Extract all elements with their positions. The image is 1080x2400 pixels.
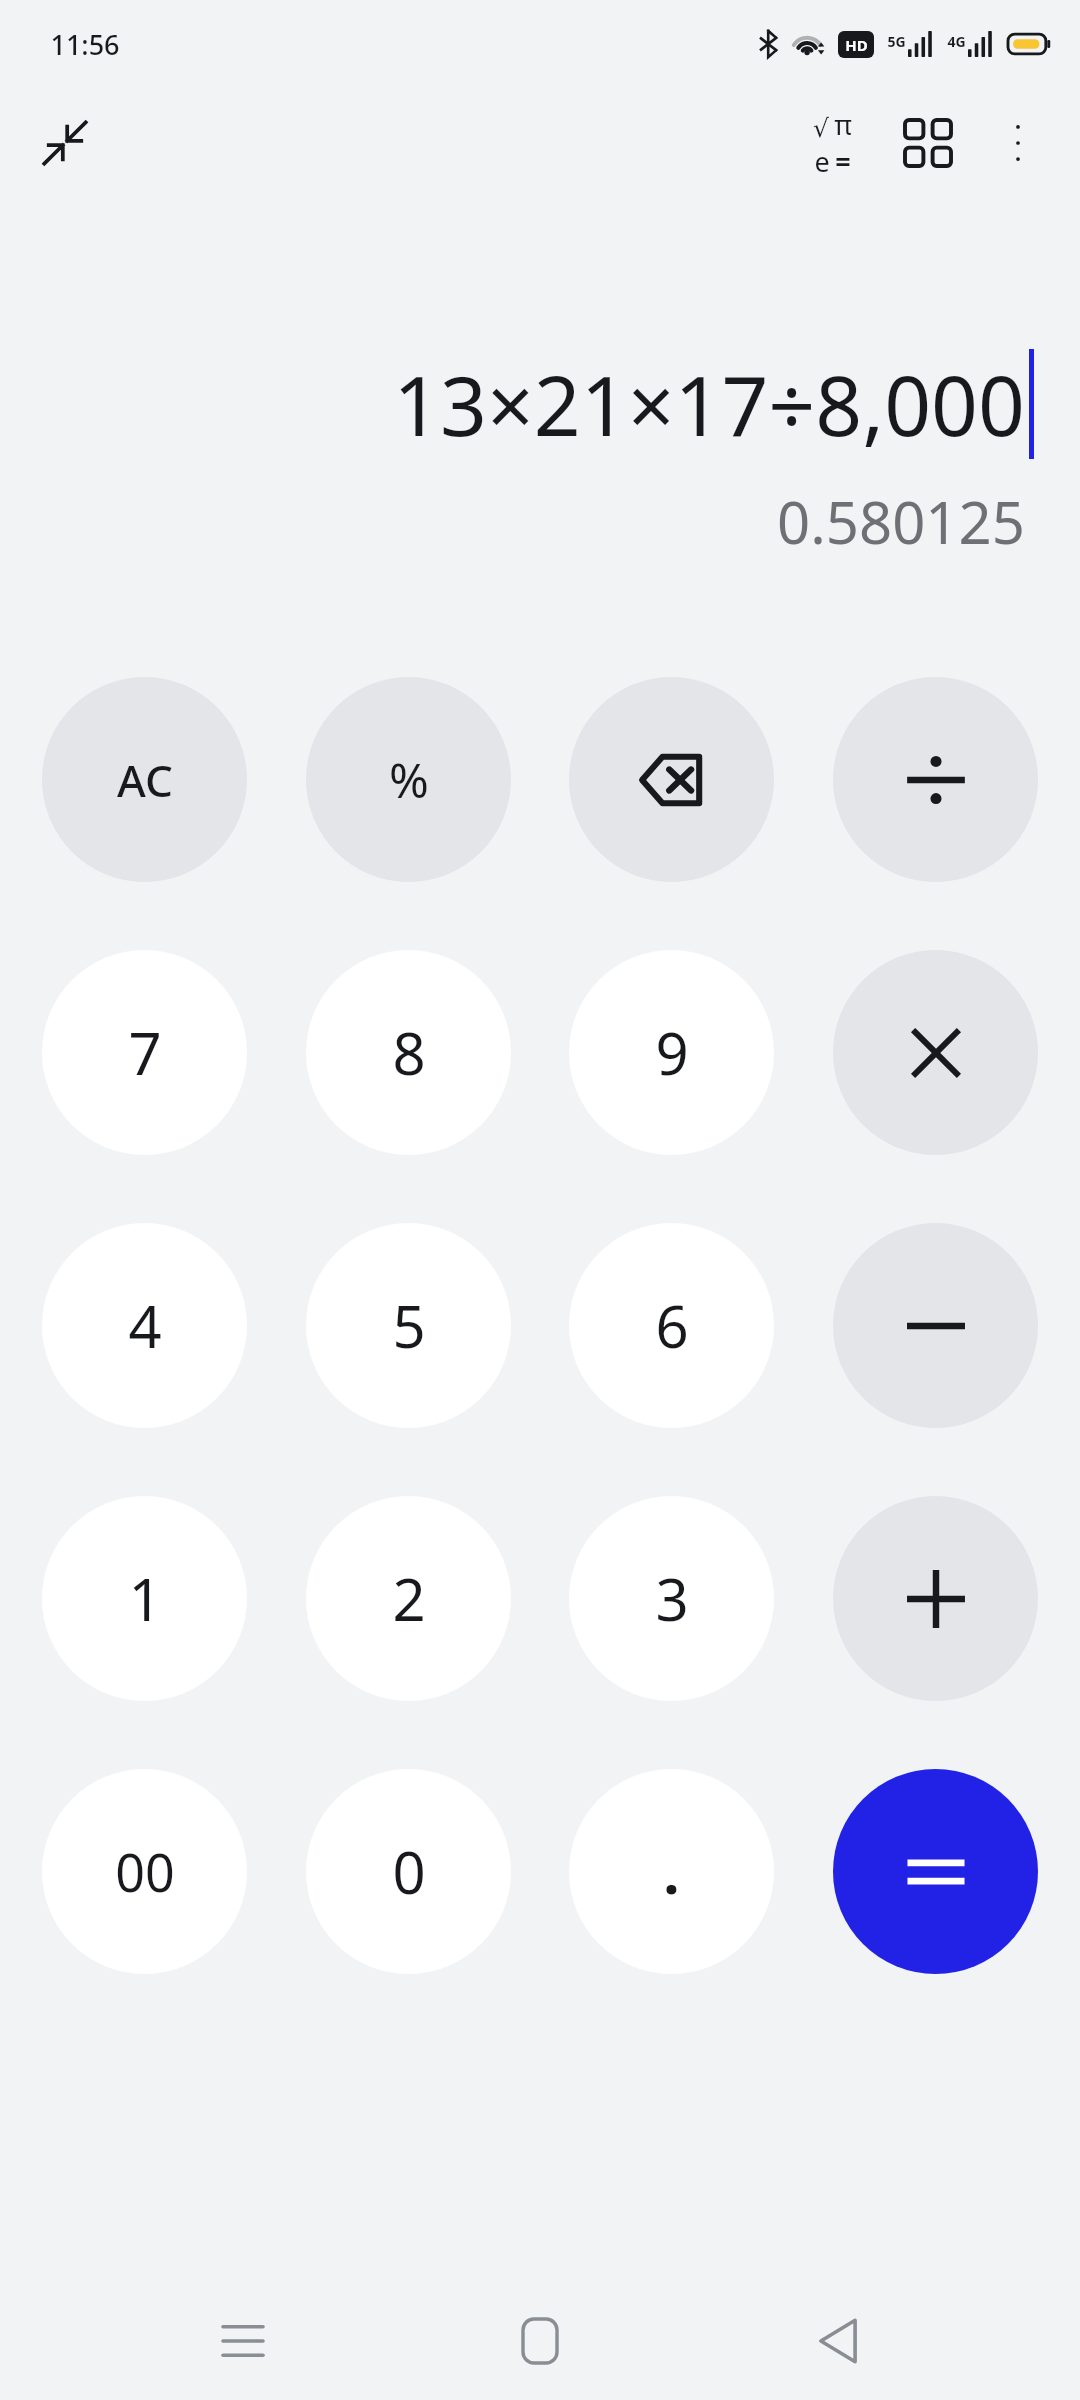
staticText: 00 — [115, 1836, 175, 1907]
button[interactable]: Equals — [833, 1769, 1038, 1974]
staticText: 5 — [392, 1286, 426, 1365]
button[interactable]: 7 — [42, 950, 247, 1155]
staticText: 11:56 — [50, 26, 120, 63]
staticText: π — [834, 106, 852, 143]
button[interactable]: Scientific mode — [790, 101, 874, 185]
staticText: % — [389, 747, 429, 812]
button[interactable]: Recent apps — [188, 2286, 298, 2396]
staticText: √ — [813, 114, 829, 143]
staticText: 0.580125 — [777, 482, 1025, 561]
button[interactable]: Home — [485, 2286, 595, 2396]
staticText: 13×21×17÷8,000 — [393, 348, 1025, 460]
staticText: 3 — [655, 1559, 689, 1638]
staticText: 2 — [392, 1559, 426, 1638]
staticText: . — [663, 1832, 680, 1911]
staticText: 5G — [887, 32, 906, 51]
button[interactable]: 3 — [569, 1496, 774, 1701]
button[interactable]: 1 — [42, 1496, 247, 1701]
button[interactable]: 4 — [42, 1223, 247, 1428]
staticText: 8 — [392, 1013, 426, 1092]
staticText: = — [835, 143, 851, 180]
staticText: 1 — [128, 1559, 162, 1638]
button[interactable]: Multiply — [833, 950, 1038, 1155]
button[interactable]: History — [886, 101, 970, 185]
button[interactable]: Back — [783, 2286, 893, 2396]
button[interactable]: 5 — [306, 1223, 511, 1428]
staticText: AC — [117, 750, 173, 810]
button[interactable]: 6 — [569, 1223, 774, 1428]
button[interactable]: More options — [976, 101, 1060, 185]
button[interactable]: Collapse — [26, 104, 104, 182]
staticText: 4G — [947, 32, 966, 51]
button[interactable]: . — [569, 1769, 774, 1974]
staticText: 0 — [392, 1832, 426, 1911]
staticText: 7 — [128, 1013, 162, 1092]
button[interactable]: Divide — [833, 677, 1038, 882]
button[interactable]: 2 — [306, 1496, 511, 1701]
button[interactable]: % — [306, 677, 511, 882]
button[interactable]: 0 — [306, 1769, 511, 1974]
button[interactable]: Subtract — [833, 1223, 1038, 1428]
button[interactable]: AC — [42, 677, 247, 882]
staticText: 6 — [655, 1286, 689, 1365]
button[interactable]: Backspace — [569, 677, 774, 882]
staticText: 4 — [128, 1286, 162, 1365]
button[interactable]: Add — [833, 1496, 1038, 1701]
staticText: e — [814, 143, 830, 180]
button[interactable]: 00 — [42, 1769, 247, 1974]
staticText: 9 — [655, 1013, 689, 1092]
staticText: HD — [845, 35, 868, 55]
button[interactable]: 8 — [306, 950, 511, 1155]
button[interactable]: 9 — [569, 950, 774, 1155]
